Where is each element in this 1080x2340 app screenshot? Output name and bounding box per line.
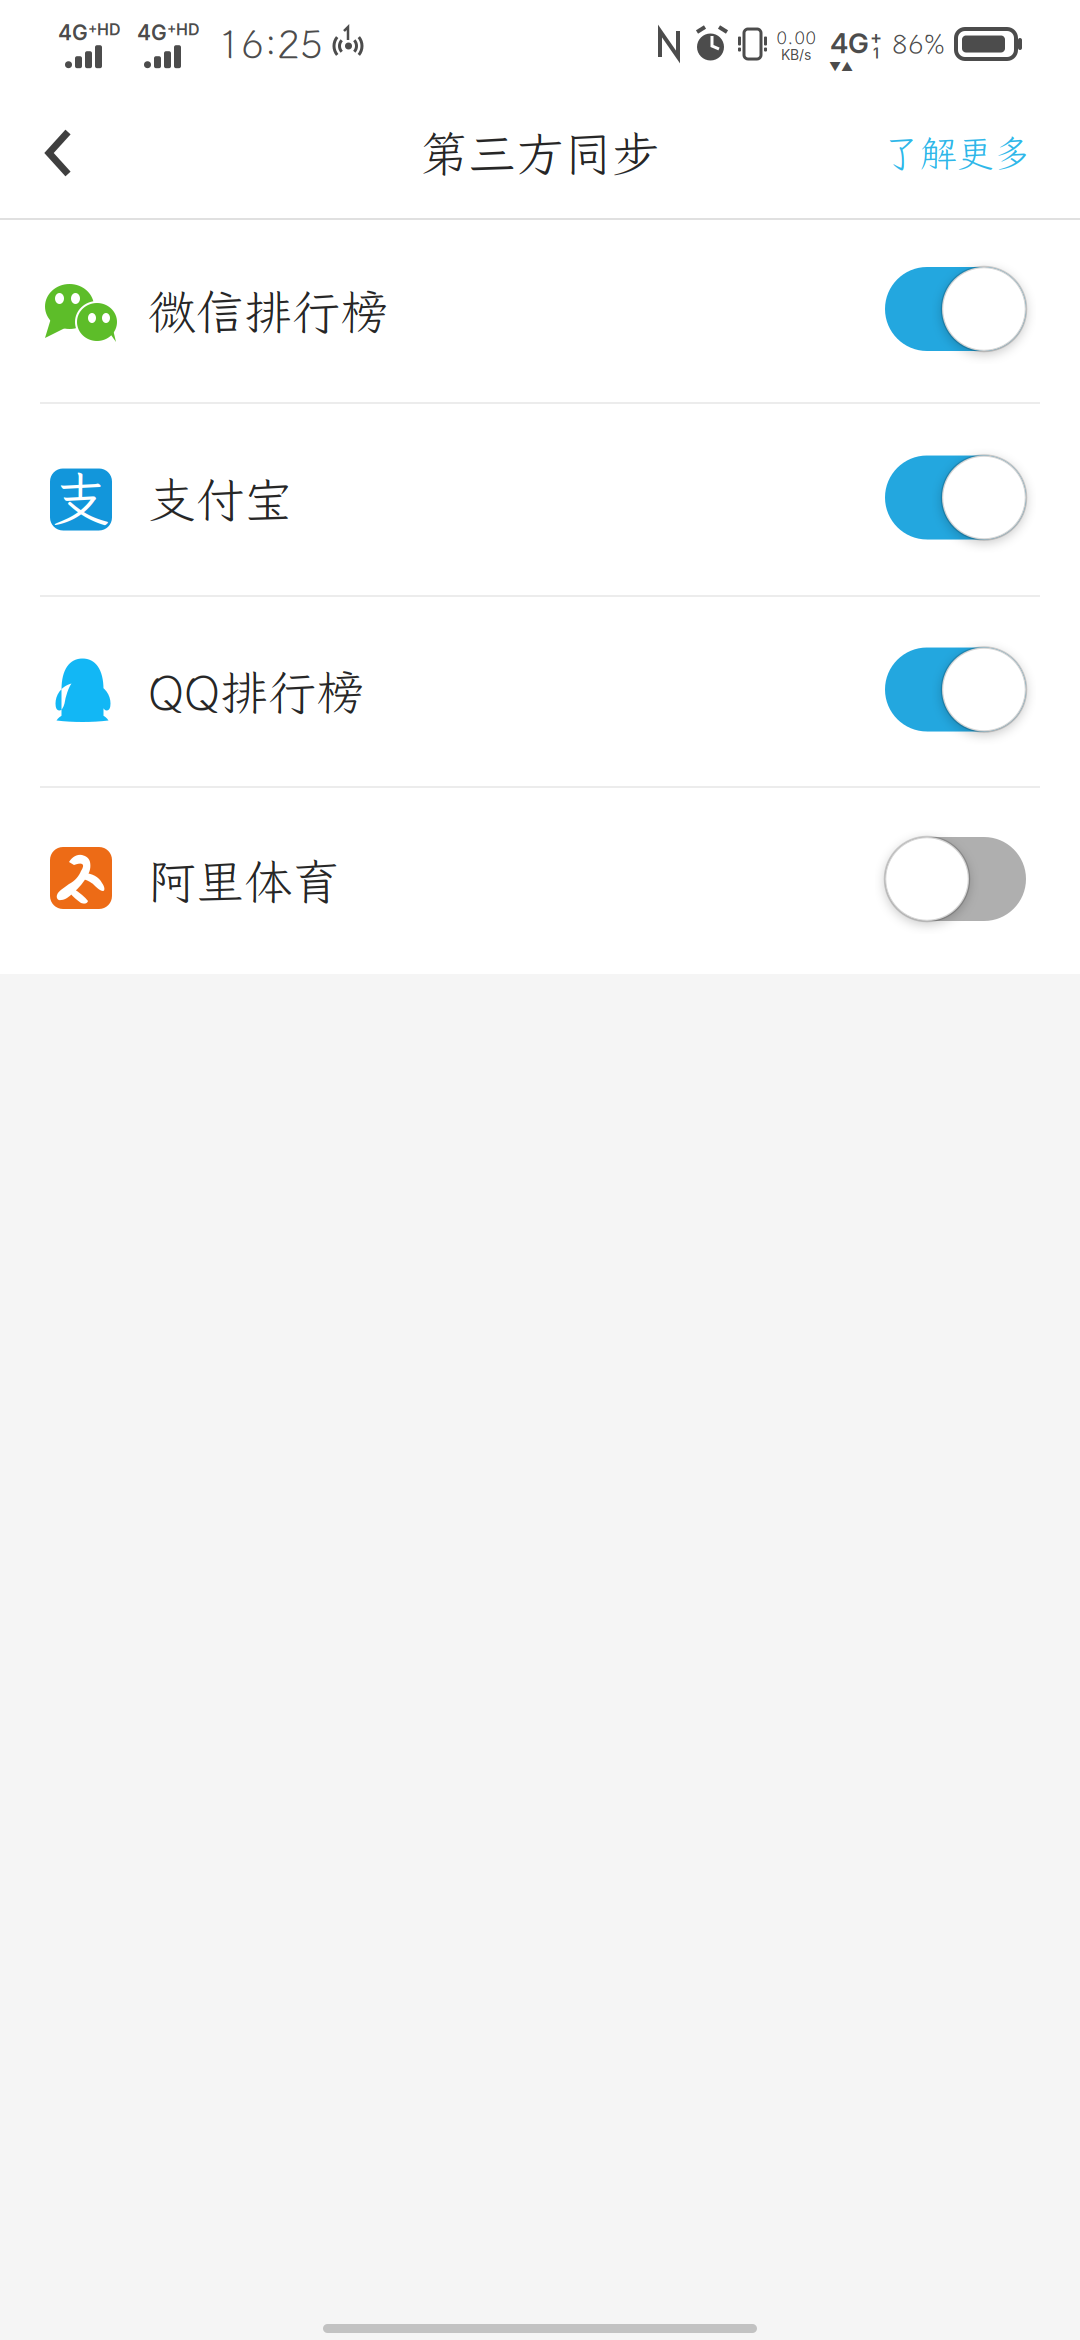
button[interactable]: 阿里体育 <box>0 788 1080 974</box>
staticText: + <box>167 20 176 37</box>
button[interactable]: Back <box>18 105 105 201</box>
staticText: ▼▲ <box>829 59 853 74</box>
button[interactable]: 微信排行榜 <box>0 220 1080 404</box>
staticText: 0.00 <box>776 24 816 49</box>
staticText: 4G <box>58 20 88 45</box>
staticText: 4G <box>830 26 869 60</box>
button[interactable]: 支 <box>0 404 1080 597</box>
staticText: 支付宝 <box>148 468 292 531</box>
staticText: 支 <box>52 460 110 537</box>
staticText: 了解更多 <box>883 129 1031 177</box>
staticText: QQ排行榜 <box>148 660 364 723</box>
button[interactable]: 阿里体育 off <box>885 837 1026 921</box>
staticText: 16:25 <box>218 19 323 69</box>
staticText: + <box>870 26 882 48</box>
staticText: 第三方同步 <box>420 121 660 185</box>
staticText: 1 <box>873 45 879 62</box>
button[interactable]: 微信排行榜 on <box>885 267 1026 351</box>
staticText: + <box>88 20 97 37</box>
staticText: 86% <box>892 27 945 61</box>
staticText: KB/s <box>781 46 811 63</box>
staticText: HD <box>176 20 200 39</box>
staticText: 阿里体育 <box>148 849 340 913</box>
button[interactable]: QQ排行榜 on <box>885 647 1026 731</box>
staticText: 微信排行榜 <box>148 279 388 343</box>
button[interactable]: QQ排行榜 <box>0 597 1080 788</box>
staticText: HD <box>97 20 121 39</box>
staticText: 4G <box>137 20 167 45</box>
button[interactable]: 了解更多 <box>859 107 1062 199</box>
button[interactable]: 支付宝 on <box>885 455 1026 539</box>
